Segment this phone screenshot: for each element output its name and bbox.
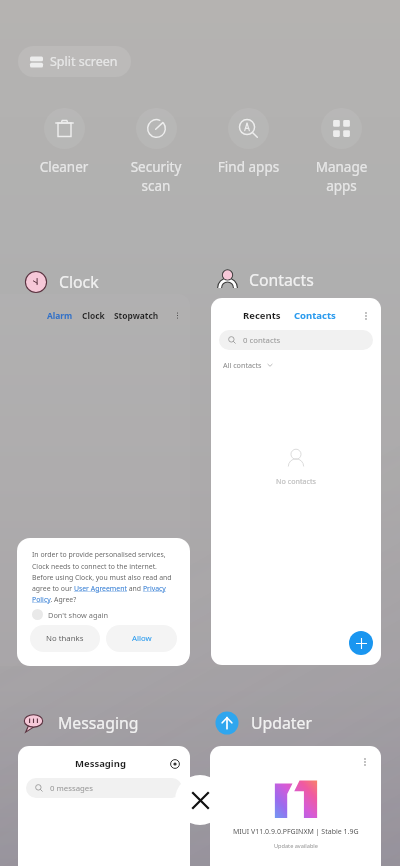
button[interactable]: Close: [175, 775, 225, 825]
staticText: All contacts: [223, 360, 262, 370]
button[interactable]: Add contact: [349, 631, 373, 655]
staticText: Contacts: [249, 269, 314, 291]
staticText: Security scan: [110, 158, 202, 194]
staticText: Split screen: [50, 53, 118, 70]
staticText: Messaging: [75, 757, 126, 770]
staticText: Alarm: [47, 310, 73, 321]
staticText: Contacts: [294, 309, 336, 322]
staticText: Updater: [251, 712, 312, 734]
button[interactable]: Don't show again: [32, 609, 109, 620]
button[interactable]: MIUI V11.0.9.0.PFGINXM | Stable 1.9G: [210, 746, 381, 866]
staticText: MIUI V11.0.9.0.PFGINXM | Stable 1.9G: [233, 827, 359, 837]
staticText: Cleaner: [18, 158, 110, 176]
staticText: Messaging: [58, 712, 139, 734]
staticText: Stopwatch: [114, 310, 159, 321]
staticText: 0 contacts: [243, 335, 281, 346]
button[interactable]: Allow: [106, 625, 177, 652]
staticText: Clock: [59, 271, 99, 293]
button[interactable]: Alarm: [0, 294, 190, 666]
button[interactable]: Split screen: [18, 46, 131, 77]
button[interactable]: Cleaner: [18, 108, 110, 176]
button[interactable]: Messaging: [18, 746, 190, 866]
staticText: Update available: [274, 842, 318, 850]
button[interactable]: Recents: [211, 298, 381, 665]
button[interactable]: Security scan: [110, 108, 202, 194]
staticText: 0 messages: [50, 783, 93, 794]
staticText: Don't show again: [48, 610, 109, 620]
staticText: No thanks: [46, 633, 84, 644]
staticText: Manage apps: [295, 158, 388, 194]
staticText: No contacts: [276, 476, 317, 486]
button[interactable]: Find apps: [202, 108, 295, 176]
button[interactable]: 0 messages: [26, 778, 182, 798]
staticText: Allow: [132, 633, 152, 644]
staticText: Clock: [82, 310, 105, 321]
staticText: Find apps: [202, 158, 295, 176]
button[interactable]: All contacts: [223, 360, 274, 370]
staticText: Recents: [243, 309, 281, 322]
button[interactable]: Manage apps: [295, 108, 388, 194]
button[interactable]: 0 contacts: [219, 330, 373, 350]
button[interactable]: No thanks: [30, 625, 100, 652]
staticText: In order to provide personalised service…: [32, 550, 179, 604]
